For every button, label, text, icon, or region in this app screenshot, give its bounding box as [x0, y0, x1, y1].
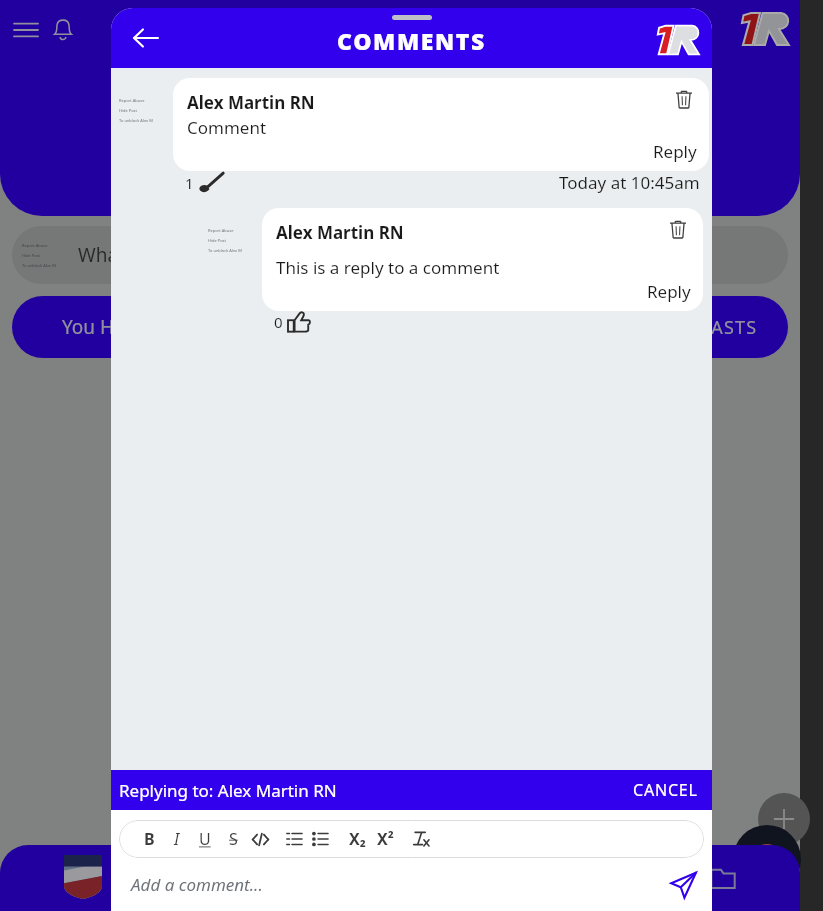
staticText: Report Abuse	[208, 228, 234, 233]
staticText: U	[199, 828, 211, 850]
staticText: Hide Post	[119, 108, 137, 113]
staticText: S	[229, 828, 238, 850]
staticText: X₂	[349, 828, 366, 850]
staticText: I	[174, 828, 180, 850]
button[interactable]: S	[219, 820, 247, 858]
button[interactable]: Like	[288, 311, 310, 333]
button[interactable]: Add a comment...	[119, 873, 658, 896]
button[interactable]: Record	[733, 825, 801, 893]
staticText: PODCASTS	[657, 315, 758, 340]
staticText: X²	[377, 828, 394, 850]
staticText: This is a reply to a comment	[276, 256, 500, 279]
button[interactable]: Notifications	[48, 14, 78, 44]
button[interactable]: X²	[371, 820, 399, 858]
staticText: Report Abuse	[22, 243, 48, 248]
button[interactable]: CANCEL	[627, 775, 704, 805]
staticText: You Have 1 Unread Message	[62, 314, 317, 340]
staticText: COMMENTS	[337, 25, 486, 56]
staticText: To unblock Alex M	[119, 118, 153, 123]
button[interactable]: I	[163, 820, 191, 858]
button[interactable]: Reply	[653, 140, 697, 163]
staticText: Hide Post	[22, 253, 40, 258]
button[interactable]: Reply	[647, 280, 691, 303]
button[interactable]: Team	[62, 853, 104, 901]
staticText: Add a comment...	[131, 873, 263, 896]
button[interactable]: B	[135, 820, 163, 858]
button[interactable]: Bulleted list	[307, 820, 333, 858]
staticText: Comment	[187, 116, 267, 139]
staticText: Hide Post	[208, 238, 226, 243]
staticText: To unblock Alex M	[208, 248, 242, 253]
staticText: Replying to: Alex Martin RN	[119, 779, 337, 802]
button[interactable]: Logo	[652, 20, 704, 60]
staticText: Alex Martin RN	[187, 91, 315, 114]
button[interactable]: Clear formatting	[407, 820, 433, 858]
button[interactable]: Numbered list	[281, 820, 307, 858]
button[interactable]: Alex Martin RN	[173, 78, 709, 171]
staticText: Report Abuse	[119, 98, 145, 103]
staticText: CANCEL	[633, 779, 698, 801]
staticText: What's on your mind?	[78, 242, 272, 268]
button[interactable]: Delete	[663, 214, 693, 244]
button[interactable]: Code	[247, 820, 273, 858]
staticText: 0	[274, 312, 283, 332]
button[interactable]: Files	[706, 861, 740, 895]
staticText: Today at 10:45am	[559, 171, 700, 194]
staticText: Alex Martin RN	[276, 221, 404, 244]
button[interactable]: Alex Martin RN	[262, 208, 703, 311]
button[interactable]: Send	[658, 860, 708, 910]
staticText: B	[144, 828, 155, 850]
button[interactable]: Back	[121, 14, 169, 62]
button[interactable]: Stick tap	[198, 172, 224, 194]
staticText: 1	[185, 173, 194, 193]
button[interactable]: You Have 1 Unread Message	[12, 296, 788, 358]
button[interactable]: Add	[758, 793, 810, 845]
staticText: To unblock Alex M	[22, 263, 56, 268]
button[interactable]: X₂	[343, 820, 371, 858]
button[interactable]: Report Abuse	[12, 226, 788, 284]
button[interactable]: Menu	[12, 16, 40, 44]
button[interactable]: U	[191, 820, 219, 858]
button[interactable]: Delete	[669, 84, 699, 114]
